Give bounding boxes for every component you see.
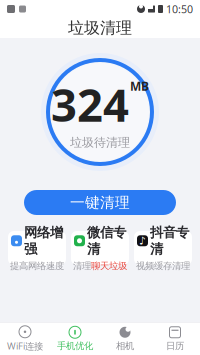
staticText: 网络增强 <box>24 224 63 257</box>
staticText: 视频缓存清理 <box>136 260 190 272</box>
staticText: 抖音专清 <box>150 224 189 257</box>
staticText: WiFi连接 <box>7 340 43 352</box>
staticText: 垃圾待清理 <box>70 135 130 150</box>
staticText: 聊天垃圾 <box>91 260 127 272</box>
button[interactable]: 一键清理 <box>24 190 176 215</box>
staticText: 日历 <box>166 340 184 352</box>
staticText: 提高网络速度 <box>10 260 64 272</box>
staticText: 10:50 <box>166 2 193 16</box>
button[interactable]: 日历 <box>150 323 200 355</box>
staticText: 垃圾清理 <box>68 18 132 38</box>
button[interactable]: 相机 <box>100 323 150 355</box>
button[interactable]: ♪ <box>134 231 192 265</box>
button[interactable]: 手机优化 <box>50 323 100 355</box>
staticText: ♪ <box>139 235 146 247</box>
staticText: 324 <box>51 74 129 134</box>
button[interactable]: 微信专清 <box>71 231 129 265</box>
button[interactable]: 网络增强 <box>8 231 66 265</box>
staticText: 清理 <box>73 260 91 272</box>
staticText: 一键清理 <box>70 193 130 211</box>
staticText: 手机优化 <box>57 340 93 352</box>
staticText: MB <box>130 78 149 94</box>
button[interactable]: WiFi连接 <box>0 323 50 355</box>
staticText: 微信专清 <box>87 224 126 257</box>
staticText: 相机 <box>116 340 134 352</box>
